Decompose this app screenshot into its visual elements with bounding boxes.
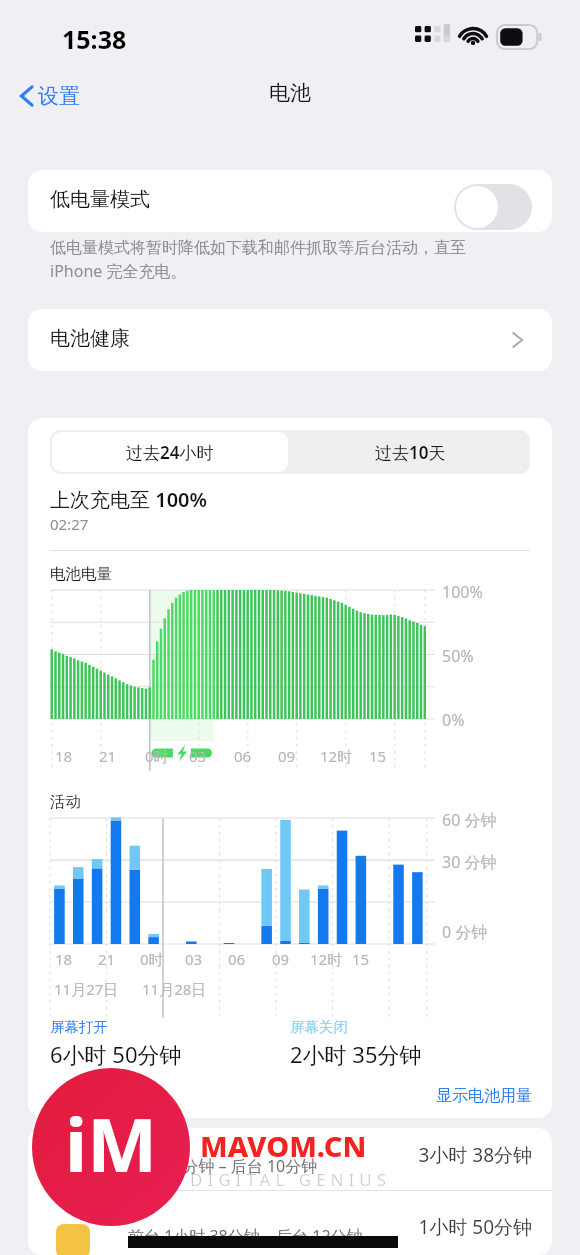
staticText: 11月27日 bbox=[54, 979, 119, 999]
staticText: 0时 bbox=[145, 746, 169, 766]
button[interactable]: 过去10天 bbox=[292, 432, 528, 472]
staticText: 屏幕打开 bbox=[50, 1018, 108, 1036]
staticText: 06 bbox=[234, 746, 252, 766]
button[interactable]: 过去24小时 bbox=[52, 432, 288, 472]
staticText: 0 分钟 bbox=[442, 921, 488, 943]
staticText: 100% bbox=[442, 581, 483, 603]
staticText: 1小时 50分钟 bbox=[368, 1214, 532, 1240]
staticText: 21 bbox=[99, 746, 117, 766]
staticText: 前台 1小时 38分钟 – 后台 12分钟 bbox=[128, 1225, 363, 1247]
button[interactable]: 低电量模式开关 bbox=[454, 184, 532, 230]
staticText: DIGITAL GENIUS bbox=[190, 1168, 392, 1191]
staticText: 过去10天 bbox=[375, 441, 446, 464]
staticText: 前台 28分钟 – 后台 10分钟 bbox=[128, 1155, 318, 1177]
staticText: 0% bbox=[442, 709, 465, 731]
button[interactable]: 低电量模式 bbox=[28, 170, 552, 232]
staticText: 电池 bbox=[0, 80, 580, 106]
staticText: iM bbox=[65, 1093, 157, 1194]
staticText: 低电量模式 bbox=[50, 187, 150, 212]
staticText: 03 bbox=[189, 746, 207, 766]
staticText: 03 bbox=[185, 949, 203, 969]
staticText: 过去24小时 bbox=[126, 441, 214, 464]
button[interactable]: 设置 bbox=[18, 78, 80, 114]
staticText: 上次充电至 100% bbox=[50, 486, 208, 513]
staticText: 02:27 bbox=[50, 514, 89, 534]
staticText: 18 bbox=[55, 949, 73, 969]
staticText: 12时 bbox=[320, 746, 353, 766]
staticText: 3小时 38分钟 bbox=[368, 1142, 532, 1168]
button[interactable]: 显示电池用量 bbox=[358, 1086, 532, 1112]
staticText: 低电量模式将暂时降低如下载和邮件抓取等后台活动，直至 iPhone 完全充电。 bbox=[50, 238, 520, 282]
staticText: 09 bbox=[278, 746, 296, 766]
staticText: 设置 bbox=[38, 83, 80, 109]
staticText: 15:38 bbox=[62, 22, 127, 56]
staticText: 18 bbox=[55, 746, 73, 766]
staticText: 60 分钟 bbox=[442, 809, 497, 831]
staticText: MAVOM.CN bbox=[200, 1126, 367, 1165]
staticText: 6小时 50分钟 bbox=[50, 1039, 182, 1069]
staticText: 15 bbox=[352, 949, 370, 969]
staticText: 电池电量 bbox=[50, 564, 112, 584]
staticText: 30 分钟 bbox=[442, 851, 497, 873]
staticText: 06 bbox=[228, 949, 246, 969]
staticText: 09 bbox=[272, 949, 290, 969]
staticText: 21 bbox=[98, 949, 116, 969]
staticText: 11月28日 bbox=[142, 979, 207, 999]
staticText: 电池健康 bbox=[50, 326, 130, 351]
staticText: 15 bbox=[369, 746, 387, 766]
staticText: 屏幕关闭 bbox=[290, 1018, 348, 1036]
staticText: 2小时 35分钟 bbox=[290, 1039, 422, 1069]
staticText: 显示电池用量 bbox=[358, 1086, 532, 1106]
staticText: 50% bbox=[442, 645, 474, 667]
staticText: 12时 bbox=[310, 949, 343, 969]
staticText: 0时 bbox=[140, 949, 164, 969]
button[interactable]: 电池健康 bbox=[28, 309, 552, 371]
staticText: 活动 bbox=[50, 792, 81, 812]
